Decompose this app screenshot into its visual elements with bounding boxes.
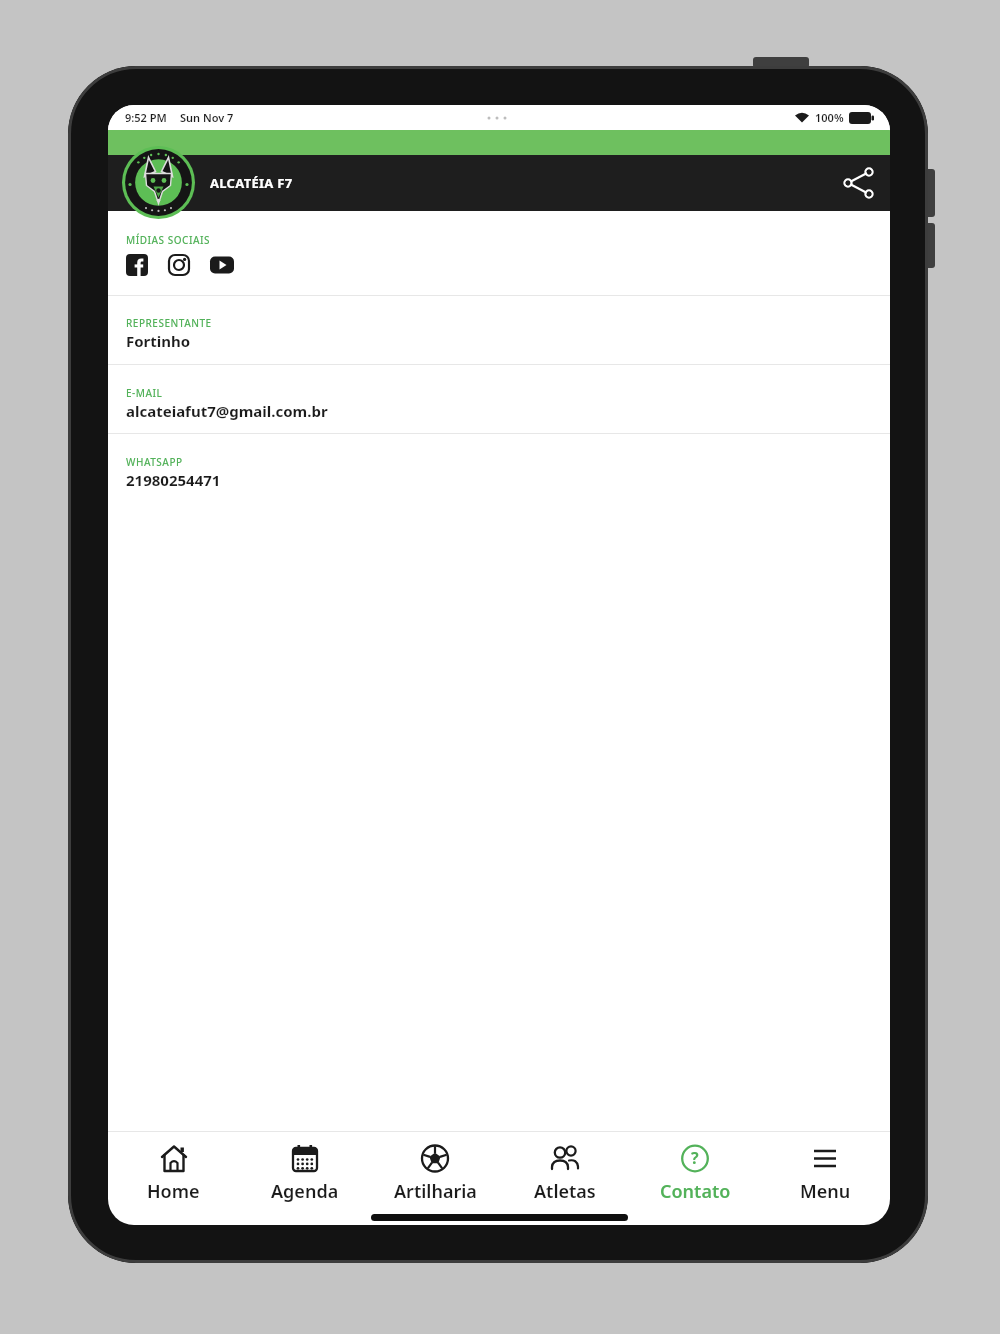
button[interactable] [122, 146, 195, 219]
button[interactable] [126, 254, 148, 276]
button[interactable]: 21980254471 [126, 470, 221, 490]
staticText: ALCATÉIA F7 [210, 174, 293, 192]
staticText: MÍDIAS SOCIAIS [126, 233, 211, 247]
button[interactable] [168, 254, 190, 276]
staticText: 100% [815, 110, 844, 125]
staticText: Sun Nov 7 [180, 110, 234, 125]
staticText: REPRESENTANTE [126, 316, 212, 330]
button[interactable]: Artilharia [370, 1132, 500, 1204]
button[interactable] [844, 168, 874, 198]
button[interactable] [210, 254, 234, 276]
staticText: Menu [800, 1179, 851, 1204]
staticText: Atletas [534, 1179, 596, 1204]
button[interactable]: alcateiafut7@gmail.com.br [126, 401, 328, 421]
staticText: Agenda [271, 1179, 339, 1204]
button[interactable]: Home [108, 1132, 239, 1204]
button[interactable]: Atletas [500, 1132, 630, 1204]
button[interactable]: Agenda [239, 1132, 370, 1204]
staticText: Artilharia [394, 1179, 477, 1204]
staticText: WHATSAPP [126, 455, 183, 469]
staticText: Home [147, 1179, 200, 1204]
button[interactable]: ? [630, 1132, 760, 1204]
staticText: E-MAIL [126, 386, 163, 400]
button[interactable]: Menu [760, 1132, 890, 1204]
staticText: Contato [660, 1179, 731, 1204]
staticText: 9:52 PM [125, 110, 167, 125]
staticText: ? [691, 1147, 699, 1169]
button[interactable]: Fortinho [126, 331, 191, 351]
